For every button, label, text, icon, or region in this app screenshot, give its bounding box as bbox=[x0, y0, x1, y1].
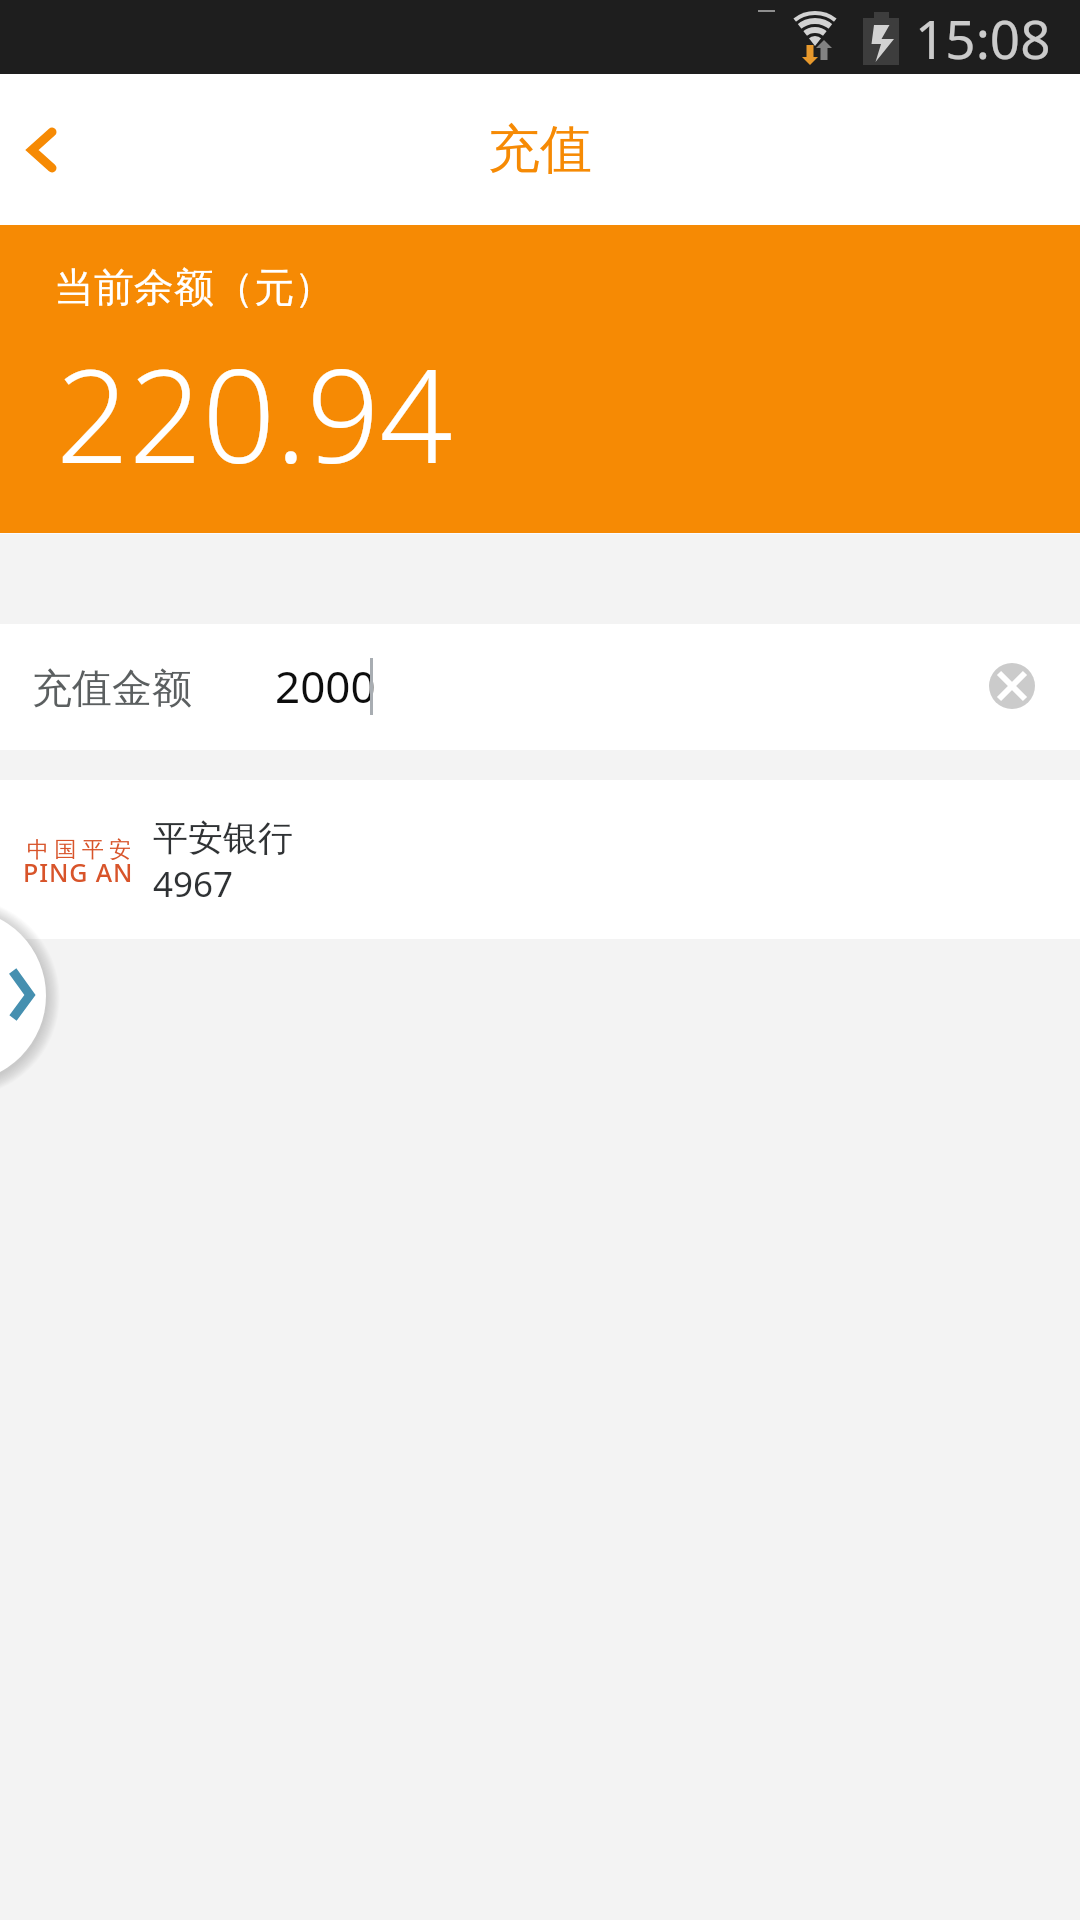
button[interactable]: Next bbox=[0, 909, 46, 1082]
staticText: 15:08 bbox=[915, 2, 1051, 74]
staticText: 当前余额（元） bbox=[54, 262, 334, 312]
button[interactable]: Clear bbox=[989, 663, 1035, 709]
button[interactable]: 中国平安 bbox=[0, 780, 1080, 939]
button[interactable]: Back bbox=[0, 74, 110, 225]
staticText: 平安银行 bbox=[153, 816, 293, 860]
staticText: 4967 bbox=[153, 860, 234, 908]
staticText: 2000 bbox=[275, 656, 376, 716]
staticText: PING AN bbox=[23, 855, 133, 889]
staticText: 充值 bbox=[488, 117, 592, 183]
staticText: 中国平安 bbox=[24, 836, 134, 864]
button[interactable]: 充值金额 bbox=[0, 624, 1080, 750]
staticText: 充值金额 bbox=[32, 663, 192, 713]
staticText: 220.94 bbox=[56, 326, 453, 500]
